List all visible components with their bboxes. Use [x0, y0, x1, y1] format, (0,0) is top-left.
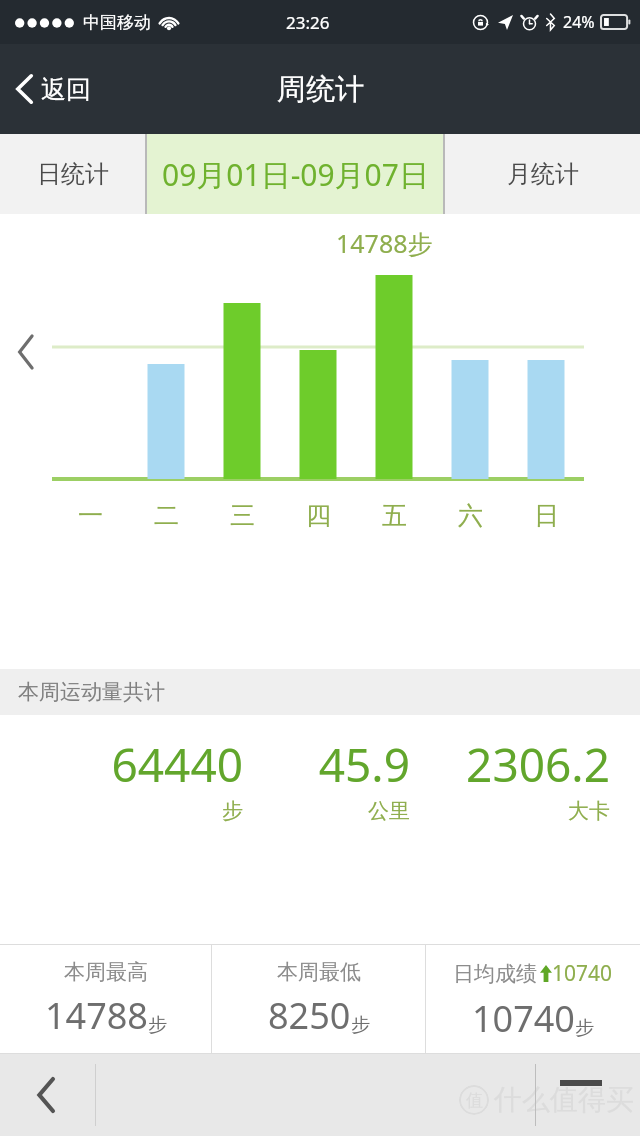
staticText: 周统计 — [277, 71, 364, 108]
staticText: 中国移动 — [83, 12, 151, 33]
staticText: 公里 — [368, 798, 410, 824]
staticText: 本周运动量共计 — [18, 679, 165, 705]
button[interactable]: Previous week — [6, 332, 46, 372]
staticText: 步 — [148, 1013, 167, 1037]
staticText: 本周最高 — [64, 959, 148, 985]
button[interactable]: 本周最高 — [0, 945, 211, 1053]
button[interactable]: 返回 — [0, 44, 105, 134]
staticText: 一 — [78, 500, 103, 531]
staticText: 14788步 — [336, 226, 433, 260]
staticText: 64440 — [111, 733, 243, 796]
staticText: 步 — [575, 1016, 594, 1040]
staticText: 09月01日-09月07日 — [162, 154, 429, 195]
staticText: 五 — [382, 500, 407, 531]
staticText: 本周最低 — [277, 959, 361, 985]
staticText: 三 — [230, 500, 255, 531]
button[interactable]: 本周最低 — [212, 945, 425, 1053]
staticText: 14788 — [45, 991, 148, 1040]
staticText: 月统计 — [507, 159, 579, 189]
staticText: 四 — [306, 500, 331, 531]
button[interactable]: 日均成绩 — [426, 945, 640, 1053]
staticText: 大卡 — [568, 798, 610, 824]
button[interactable]: Back — [18, 1067, 74, 1123]
button[interactable]: 09月01日-09月07日 — [147, 134, 443, 214]
staticText: 返回 — [41, 74, 91, 105]
staticText: 值 — [466, 1090, 483, 1111]
staticText: 什么值得买 — [494, 1082, 634, 1117]
staticText: 10740 — [472, 994, 575, 1043]
staticText: 8250 — [268, 991, 351, 1040]
staticText: 24% — [563, 11, 595, 33]
staticText: 二 — [154, 500, 179, 531]
staticText: 日 — [534, 500, 559, 531]
staticText: 步 — [222, 798, 243, 824]
button[interactable]: 月统计 — [445, 134, 640, 214]
staticText: 2306.2 — [466, 733, 610, 796]
staticText: 23:26 — [286, 11, 330, 34]
staticText: 六 — [458, 500, 483, 531]
staticText: 日均成绩 — [453, 961, 537, 987]
staticText: 步 — [351, 1013, 370, 1037]
staticText: 日统计 — [37, 159, 109, 189]
button[interactable]: 日统计 — [0, 134, 145, 214]
staticText: 10740 — [552, 959, 613, 988]
staticText: 45.9 — [318, 733, 410, 796]
